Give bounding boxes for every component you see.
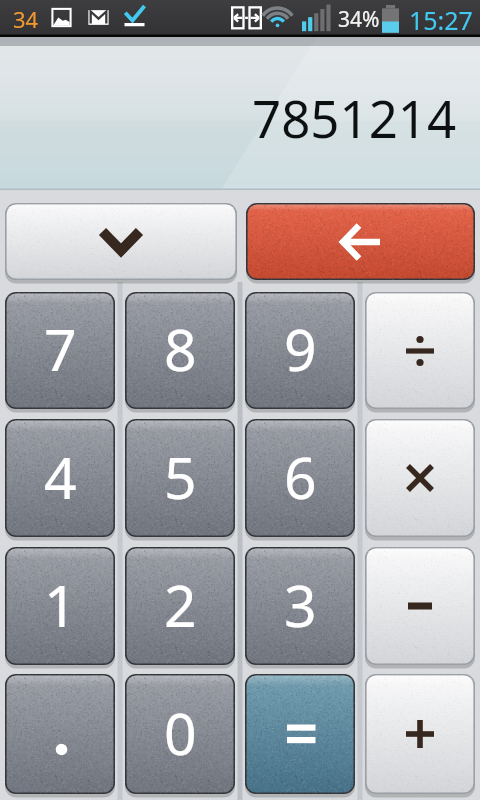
button[interactable]: 4 [5, 419, 115, 537]
staticText: 34% [338, 5, 380, 34]
staticText: 7851214 [252, 83, 457, 152]
button[interactable]: Collapse keypad [5, 203, 237, 280]
button[interactable]: 0 [125, 674, 235, 794]
button[interactable]: Delete [246, 203, 475, 280]
staticText: 3 [284, 566, 317, 644]
staticText: 9 [284, 310, 317, 388]
staticText: 6 [284, 438, 317, 516]
staticText: 5 [164, 438, 197, 516]
staticText: 0 [164, 694, 197, 772]
staticText: 15:27 [409, 3, 473, 37]
button[interactable]: 1 [5, 547, 115, 665]
staticText: 4 [44, 438, 77, 516]
button[interactable]: Subtract [365, 547, 475, 665]
staticText: 8 [164, 310, 197, 388]
button[interactable]: Divide [365, 292, 475, 409]
staticText: 34 [13, 4, 39, 34]
button[interactable]: 7 [5, 292, 115, 409]
button[interactable]: 3 [245, 547, 355, 665]
button[interactable]: 2 [125, 547, 235, 665]
button[interactable]: 6 [245, 419, 355, 537]
staticText: 1 [44, 566, 77, 644]
button[interactable]: 9 [245, 292, 355, 409]
staticText: 2 [164, 566, 197, 644]
button[interactable]: Add [365, 674, 475, 794]
button[interactable]: Decimal point [5, 674, 115, 794]
button[interactable]: Equals [245, 674, 355, 794]
staticText: 7 [44, 310, 77, 388]
button[interactable]: 8 [125, 292, 235, 409]
button[interactable]: Multiply [365, 419, 475, 537]
button[interactable]: 5 [125, 419, 235, 537]
